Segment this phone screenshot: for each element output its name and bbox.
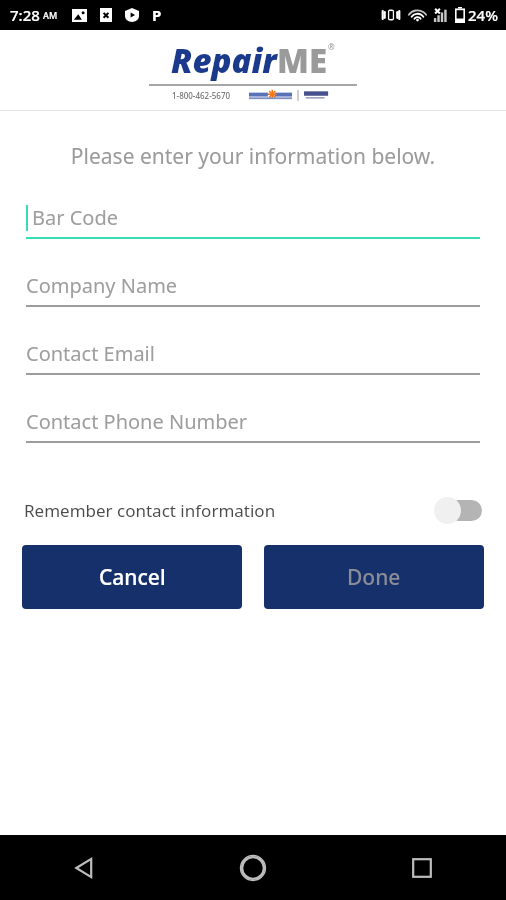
staticText: Remember contact information [24, 499, 276, 522]
staticText: ME [277, 38, 328, 83]
button[interactable]: Recent apps [337, 835, 506, 900]
button[interactable]: Company Name [26, 272, 480, 307]
button[interactable]: Cancel [22, 545, 242, 609]
staticText: 7:28 [10, 5, 40, 25]
button[interactable]: Contact Email [26, 340, 480, 375]
staticText: Cancel [99, 563, 166, 592]
button[interactable]: Contact Phone Number [26, 408, 480, 443]
button[interactable]: Remember contact information [24, 496, 482, 524]
staticText: Please enter your information below. [0, 142, 506, 171]
other: Remember contact information toggle [434, 496, 482, 524]
staticText: ® [328, 41, 335, 52]
staticText: P [152, 5, 162, 25]
button[interactable]: Back [0, 835, 168, 900]
button[interactable]: Home [168, 835, 337, 900]
staticText: Done [347, 563, 401, 592]
staticText: AM [43, 9, 58, 21]
staticText: 1-800-462-5670 [172, 90, 231, 101]
staticText: Bar Code [32, 204, 118, 231]
staticText: 24% [468, 5, 498, 25]
staticText: Repair [171, 38, 277, 83]
button[interactable]: Done [264, 545, 484, 609]
staticText: Contact Email [26, 340, 155, 367]
staticText: Company Name [26, 272, 178, 299]
staticText: Contact Phone Number [26, 408, 248, 435]
button[interactable]: Bar Code [26, 204, 480, 239]
